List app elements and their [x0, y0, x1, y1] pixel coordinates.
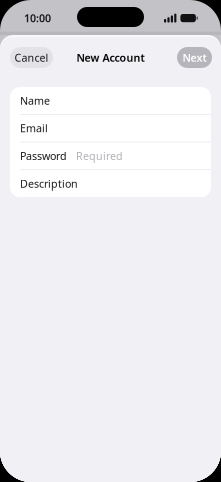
button[interactable]: Description	[10, 170, 211, 197]
staticText: Cancel	[14, 50, 48, 65]
staticText: Description	[20, 176, 78, 191]
staticText: 10:00	[24, 11, 51, 25]
button[interactable]: Name	[10, 87, 211, 114]
staticText: Password	[20, 149, 67, 163]
button[interactable]: Next	[177, 47, 212, 68]
button[interactable]: Password	[10, 142, 211, 169]
staticText: Name	[20, 93, 50, 108]
button[interactable]: Cancel	[10, 47, 53, 68]
staticText: Email	[20, 121, 48, 135]
staticText: New Account	[76, 50, 144, 65]
staticText: Required	[76, 149, 123, 163]
staticText: Next	[182, 50, 206, 65]
button[interactable]: Email	[10, 115, 211, 142]
